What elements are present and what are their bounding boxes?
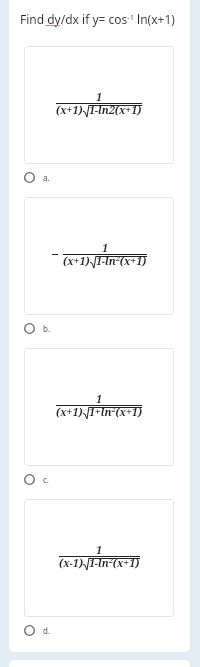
staticText: 1	[102, 241, 108, 255]
button[interactable]: 1	[24, 499, 174, 617]
button[interactable]: c.	[9, 469, 190, 490]
staticText: (x−1)	[59, 556, 83, 570]
staticText: Find dy/dx if y= cos-1 ln(x+1)	[20, 11, 175, 27]
staticText: 1	[96, 543, 102, 557]
staticText: (x+1)	[56, 405, 83, 419]
staticText: 1−ln2(x+1)	[89, 556, 140, 570]
staticText: b.	[43, 323, 51, 334]
button[interactable]: 1	[24, 46, 174, 164]
staticText: 1−ln2(x+1)	[96, 254, 147, 268]
staticText: 1	[96, 392, 102, 406]
button[interactable]: d.	[9, 620, 190, 641]
staticText: 1	[96, 90, 102, 104]
staticText: c.	[43, 474, 49, 485]
button[interactable]: b.	[9, 318, 190, 339]
staticText: 1+ln2(x+1)	[89, 405, 142, 419]
button[interactable]: 1	[24, 348, 174, 466]
staticText: d.	[43, 625, 51, 636]
button[interactable]: a.	[9, 167, 190, 188]
staticText: (x+1)	[63, 254, 90, 268]
staticText: a.	[43, 172, 50, 183]
staticText: (x+1)	[56, 103, 83, 117]
button[interactable]: 1	[24, 197, 174, 315]
staticText: 1−ln2(x+1)	[89, 103, 142, 117]
